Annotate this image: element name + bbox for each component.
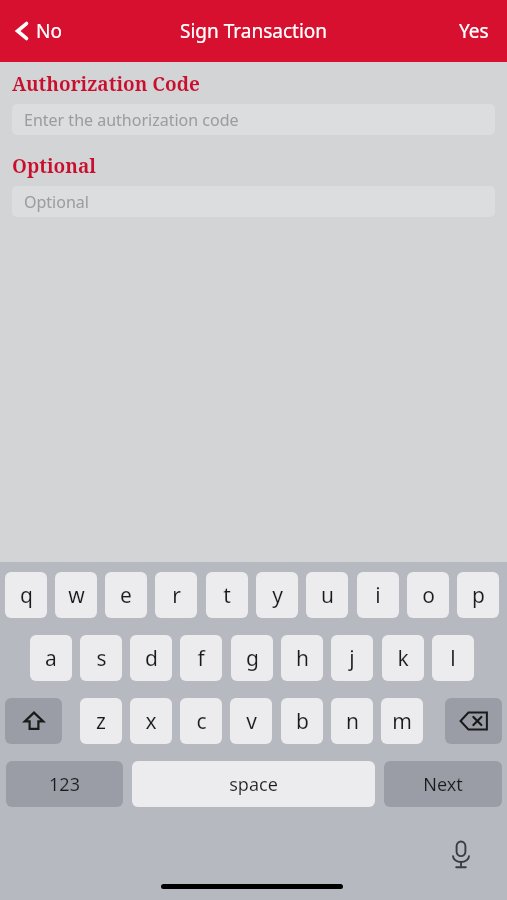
button[interactable]: x: [130, 698, 172, 744]
staticText: i: [375, 581, 381, 610]
staticText: h: [296, 644, 309, 673]
staticText: Enter the authorization code: [24, 109, 239, 131]
button[interactable]: g: [231, 635, 273, 681]
button[interactable]: Shift: [5, 698, 62, 744]
button[interactable]: v: [230, 698, 272, 744]
button[interactable]: c: [180, 698, 222, 744]
button[interactable]: q: [5, 572, 47, 618]
staticText: z: [96, 707, 106, 736]
staticText: p: [472, 581, 485, 610]
button[interactable]: r: [155, 572, 197, 618]
button[interactable]: Next: [384, 761, 502, 807]
button[interactable]: n: [331, 698, 373, 744]
button[interactable]: m: [381, 698, 423, 744]
button[interactable]: o: [407, 572, 449, 618]
button[interactable]: j: [331, 635, 373, 681]
staticText: u: [321, 581, 334, 610]
staticText: d: [145, 644, 158, 673]
button[interactable]: k: [382, 635, 424, 681]
staticText: x: [145, 707, 157, 736]
staticText: m: [392, 707, 412, 736]
staticText: v: [246, 707, 257, 736]
staticText: Authorization Code: [12, 71, 200, 97]
staticText: s: [96, 644, 107, 673]
button[interactable]: 123: [6, 761, 123, 807]
staticText: l: [450, 644, 456, 673]
button[interactable]: y: [256, 572, 298, 618]
staticText: n: [346, 707, 359, 736]
button[interactable]: Optional: [12, 186, 495, 217]
staticText: Sign Transaction: [180, 18, 328, 44]
button[interactable]: e: [105, 572, 147, 618]
button[interactable]: No: [10, 12, 66, 50]
staticText: e: [120, 581, 132, 610]
staticText: y: [272, 581, 283, 610]
button[interactable]: Voice input: [440, 834, 482, 876]
button[interactable]: f: [180, 635, 222, 681]
staticText: Yes: [459, 18, 489, 44]
button[interactable]: w: [55, 572, 97, 618]
button[interactable]: space: [132, 761, 375, 807]
staticText: k: [397, 644, 409, 673]
button[interactable]: s: [80, 635, 122, 681]
staticText: g: [246, 644, 259, 673]
button[interactable]: h: [281, 635, 323, 681]
staticText: o: [422, 581, 435, 610]
staticText: j: [349, 644, 355, 673]
staticText: Optional: [24, 191, 89, 213]
staticText: Optional: [12, 153, 97, 179]
staticText: b: [296, 707, 309, 736]
button[interactable]: t: [206, 572, 248, 618]
button[interactable]: d: [130, 635, 172, 681]
button[interactable]: i: [357, 572, 399, 618]
button[interactable]: u: [306, 572, 348, 618]
button[interactable]: z: [80, 698, 122, 744]
staticText: t: [223, 581, 231, 610]
staticText: No: [36, 18, 62, 44]
staticText: r: [172, 581, 181, 610]
button[interactable]: a: [30, 635, 72, 681]
staticText: a: [45, 644, 57, 673]
staticText: space: [229, 772, 278, 797]
button[interactable]: p: [457, 572, 499, 618]
button[interactable]: Yes: [455, 12, 493, 50]
staticText: q: [20, 581, 33, 610]
staticText: f: [197, 644, 205, 673]
staticText: c: [196, 707, 207, 736]
staticText: 123: [49, 772, 80, 797]
staticText: Next: [423, 772, 463, 797]
button[interactable]: Backspace: [445, 698, 502, 744]
button[interactable]: b: [281, 698, 323, 744]
staticText: w: [68, 581, 85, 610]
button[interactable]: l: [432, 635, 474, 681]
button[interactable]: Enter the authorization code: [12, 104, 495, 135]
